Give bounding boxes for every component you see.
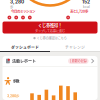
staticText: 152 — [82, 0, 90, 5]
staticText: 歩数 — [13, 78, 19, 83]
staticText: kcal — [83, 5, 90, 9]
button[interactable]: チャレンジ — [50, 43, 100, 52]
staticText: くじ券の確認はこちら — [37, 36, 67, 40]
staticText: 3,280歩 — [7, 94, 19, 98]
staticText: くじ券獲得！ — [38, 22, 62, 28]
button[interactable]: くじ券の確認はこちら — [33, 36, 67, 40]
staticText: 今日のミッション — [11, 9, 35, 14]
staticText: ダッシュボード — [11, 44, 39, 50]
staticText: チャレンジ — [65, 44, 85, 50]
button[interactable]: ダッシュボード — [0, 43, 50, 52]
button[interactable]: 活動レポート — [2, 56, 97, 66]
button[interactable]: くじ券獲得！ — [0, 21, 100, 33]
staticText: 歩 — [10, 5, 13, 9]
staticText: タップして応募に進む — [35, 29, 65, 33]
staticText: あと1,720歩 — [70, 9, 88, 14]
staticText: 3,280 — [10, 0, 24, 5]
staticText: 1週間の記録 — [70, 59, 87, 63]
staticText: 活動レポート — [12, 58, 36, 64]
